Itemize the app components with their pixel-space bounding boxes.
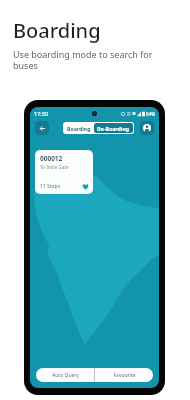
staticText: 17:30 [34, 110, 49, 117]
staticText: Boarding [13, 17, 101, 44]
button[interactable]: Back [35, 121, 49, 135]
button[interactable]: Favourite [95, 368, 153, 382]
button[interactable]: Boarding [64, 123, 94, 133]
staticText: Use boarding mode to search for buses [13, 48, 160, 72]
button[interactable]: De-Boarding [94, 123, 133, 133]
staticText: De-Boarding [97, 125, 130, 132]
button[interactable]: Auto Query [36, 368, 94, 382]
staticText: 11 Stops [40, 183, 61, 190]
button[interactable]: Profile [140, 121, 154, 135]
staticText: Auto Query [52, 372, 79, 379]
button[interactable]: 000012 [35, 150, 93, 194]
staticText: 000012 [40, 154, 63, 163]
staticText: To India Gate [40, 164, 69, 170]
staticText: 64% [146, 111, 156, 117]
staticText: Boarding [67, 125, 91, 132]
staticText: Favourite [113, 372, 136, 379]
